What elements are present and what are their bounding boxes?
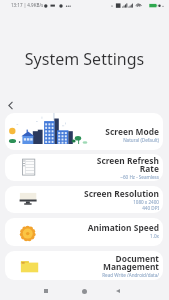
button[interactable]: Home xyxy=(76,283,92,299)
staticText: Animation Speed xyxy=(87,222,159,233)
staticText: Document Management xyxy=(102,253,159,272)
button[interactable]: Animation Speed xyxy=(5,218,163,246)
button[interactable]: Screen Resolution xyxy=(5,186,163,213)
staticText: Screen Resolution xyxy=(84,188,159,199)
button[interactable]: Back xyxy=(110,283,126,299)
staticText: 440 DPI xyxy=(142,205,159,211)
button[interactable]: Recents xyxy=(38,283,54,299)
button[interactable]: Screen Refresh Rate xyxy=(5,154,163,181)
staticText: 1.0x xyxy=(150,233,159,239)
button[interactable]: Back xyxy=(5,100,16,111)
staticText: System Settings xyxy=(0,48,169,70)
staticText: Natural (Default) xyxy=(123,137,159,143)
staticText: 1080 x 2400 xyxy=(133,199,159,205)
staticText: Screen Mode xyxy=(105,126,159,137)
button[interactable]: Screen Mode xyxy=(5,113,163,150)
staticText: 13:17 | 4.9KB/s xyxy=(11,2,44,8)
staticText: ~60 Hz - Seamless xyxy=(120,174,159,180)
staticText: Read Write /Android/data/ xyxy=(102,272,159,278)
button[interactable]: Document Management xyxy=(5,251,163,280)
staticText: Screen Refresh Rate xyxy=(96,155,159,174)
